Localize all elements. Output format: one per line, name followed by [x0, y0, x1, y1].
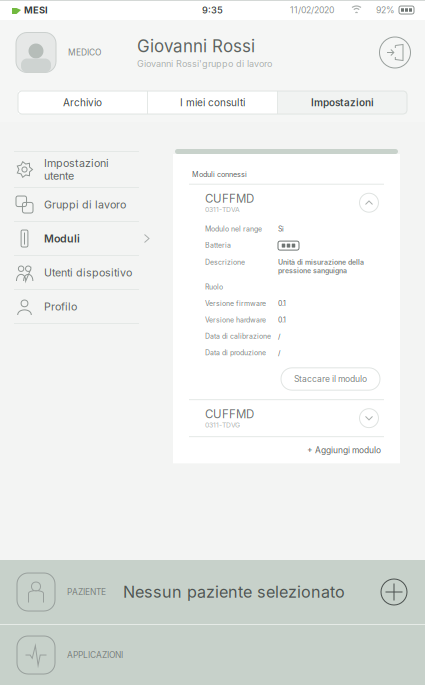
- button[interactable]: Impostazioni: [278, 91, 407, 114]
- button[interactable]: Moduli: [0, 222, 173, 255]
- staticText: /: [278, 332, 280, 340]
- staticText: /: [278, 348, 280, 357]
- button[interactable]: APPLICAZIONI: [0, 625, 425, 685]
- button[interactable]: Expand: [356, 405, 382, 431]
- staticText: Nessun paziente selezionato: [123, 582, 345, 602]
- staticText: Moduli: [44, 232, 80, 245]
- staticText: + Aggiungi modulo: [307, 445, 381, 455]
- staticText: MEDICO: [68, 47, 101, 58]
- staticText: 92%: [376, 5, 395, 15]
- staticText: Versione firmware: [205, 299, 266, 308]
- staticText: Staccare il modulo: [294, 374, 367, 384]
- staticText: Si: [278, 225, 284, 233]
- staticText: Versione hardware: [205, 316, 266, 324]
- staticText: Batteria: [205, 241, 231, 249]
- button[interactable]: Utenti dispositivo: [0, 256, 173, 289]
- staticText: Moduli connessi: [192, 170, 247, 179]
- staticText: CUFFMD: [205, 192, 254, 206]
- button[interactable]: I miei consulti: [148, 91, 277, 114]
- staticText: I miei consulti: [180, 96, 245, 109]
- staticText: 9:35: [202, 4, 223, 16]
- staticText: MESI: [24, 4, 48, 16]
- button[interactable]: Collapse: [356, 190, 382, 216]
- staticText: PAZIENTE: [67, 587, 106, 597]
- staticText: 0.1: [278, 316, 286, 324]
- staticText: 11/02/2020: [290, 5, 334, 15]
- staticText: Modulo nel range: [205, 225, 262, 233]
- button[interactable]: Logout: [375, 32, 415, 72]
- staticText: Impostazioni utente: [44, 157, 109, 182]
- staticText: Gruppi di lavoro: [44, 198, 126, 211]
- staticText: Descrizione: [205, 258, 245, 266]
- staticText: Data di produzione: [205, 348, 266, 357]
- button[interactable]: + Aggiungi modulo: [307, 437, 381, 463]
- staticText: Utenti dispositivo: [44, 266, 132, 279]
- staticText: Data di calibrazione: [205, 332, 271, 340]
- button[interactable]: Archivio: [18, 91, 147, 114]
- button[interactable]: Profilo: [0, 290, 173, 323]
- staticText: 0311-TDVG: [205, 421, 240, 429]
- button[interactable]: Gruppi di lavoro: [0, 188, 173, 221]
- staticText: Impostazioni: [311, 96, 374, 109]
- staticText: Giovanni Rossi: [137, 36, 255, 56]
- button[interactable]: PAZIENTE: [0, 560, 425, 624]
- button[interactable]: Impostazioni utente: [0, 152, 173, 187]
- button[interactable]: Staccare il modulo: [281, 368, 380, 390]
- staticText: Archivio: [63, 96, 102, 109]
- staticText: Unità di misurazione della pressione san…: [278, 258, 364, 275]
- staticText: Profilo: [44, 300, 77, 313]
- staticText: 0.1: [278, 299, 286, 308]
- staticText: Ruolo: [205, 283, 223, 291]
- staticText: Giovanni Rossi'gruppo di lavoro: [137, 58, 272, 69]
- staticText: 0311-TDVA: [205, 205, 240, 214]
- staticText: CUFFMD: [205, 407, 254, 421]
- staticText: APPLICAZIONI: [67, 650, 123, 660]
